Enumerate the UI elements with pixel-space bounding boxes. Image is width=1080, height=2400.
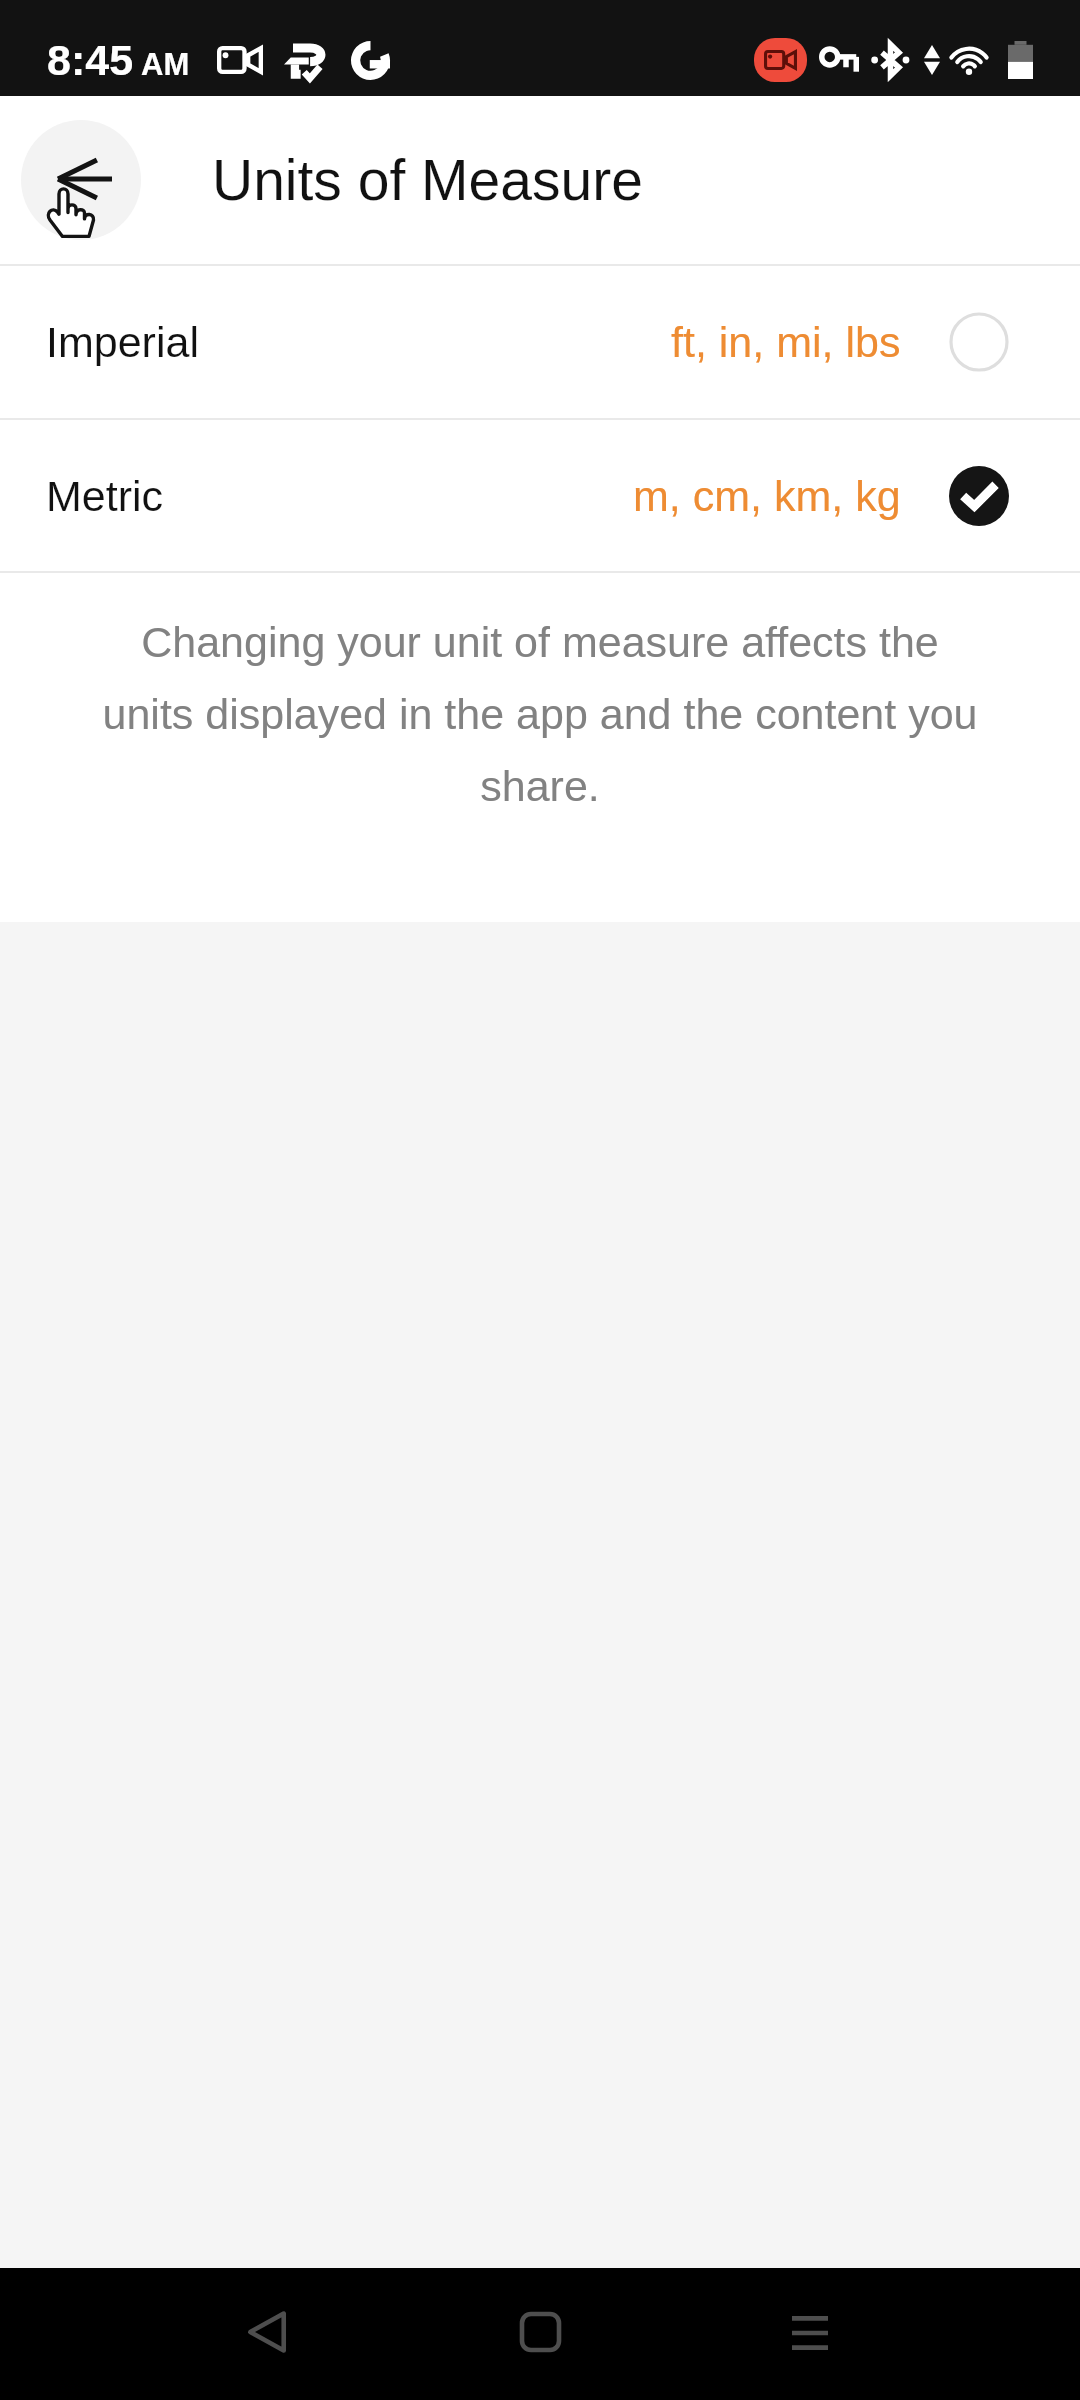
staticText: Changing your unit of measure affects th… — [93, 618, 987, 810]
button[interactable]: Metric — [0, 420, 1080, 571]
button[interactable]: Recent apps — [720, 2268, 900, 2400]
button[interactable]: Home — [450, 2268, 630, 2400]
staticText: 8:45 — [47, 36, 134, 84]
button[interactable]: Back — [21, 120, 141, 240]
staticText: Units of Measure — [212, 148, 643, 212]
staticText: AM — [141, 47, 190, 82]
staticText: m, cm, km, kg — [633, 472, 901, 520]
staticText: ft, in, mi, lbs — [671, 318, 901, 366]
button[interactable]: Back — [177, 2268, 357, 2400]
staticText: Imperial — [46, 318, 199, 366]
button[interactable]: Imperial — [0, 266, 1080, 418]
staticText: Metric — [46, 472, 164, 520]
